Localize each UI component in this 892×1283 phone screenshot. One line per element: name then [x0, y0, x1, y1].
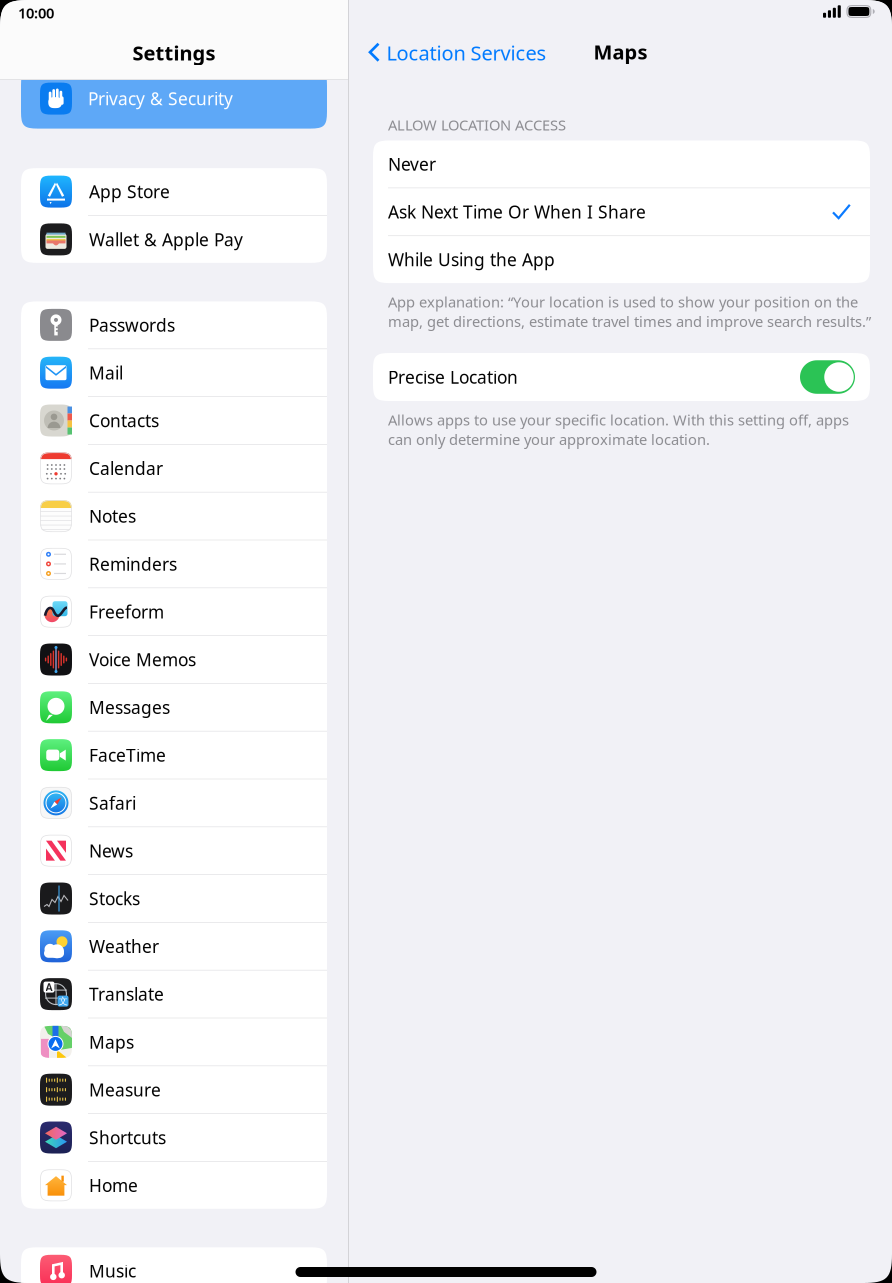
- button[interactable]: Ask Next Time Or When I Share: [373, 188, 870, 235]
- staticText: Precise Location: [388, 365, 518, 388]
- staticText: Voice Memos: [89, 648, 196, 671]
- staticText: Maps: [89, 1030, 134, 1053]
- staticText: Measure: [89, 1078, 161, 1101]
- staticText: Safari: [89, 791, 136, 814]
- staticText: Home: [89, 1174, 138, 1197]
- staticText: Notes: [89, 505, 136, 528]
- button[interactable]: FaceTime: [21, 732, 327, 779]
- staticText: While Using the App: [388, 248, 555, 271]
- staticText: Shortcuts: [89, 1126, 166, 1149]
- button[interactable]: Shortcuts: [21, 1114, 327, 1161]
- button[interactable]: Music: [21, 1247, 327, 1283]
- staticText: Location Services: [386, 39, 546, 66]
- staticText: Maps: [593, 38, 647, 65]
- button[interactable]: Location Services: [370, 39, 546, 66]
- staticText: Stocks: [89, 887, 140, 910]
- staticText: ALLOW LOCATION ACCESS: [388, 115, 566, 134]
- button[interactable]: Weather: [21, 923, 327, 970]
- button[interactable]: App Store: [21, 168, 327, 215]
- staticText: 10:00: [18, 3, 54, 22]
- button[interactable]: Calendar: [21, 445, 327, 492]
- staticText: FaceTime: [89, 744, 166, 767]
- staticText: Settings: [132, 39, 215, 66]
- button[interactable]: Voice Memos: [21, 636, 327, 683]
- button[interactable]: Stocks: [21, 875, 327, 922]
- button[interactable]: A: [21, 971, 327, 1018]
- button[interactable]: Measure: [21, 1066, 327, 1113]
- staticText: Reminders: [89, 552, 177, 575]
- staticText: A: [45, 980, 52, 994]
- button[interactable]: Contacts: [21, 397, 327, 444]
- staticText: 文: [58, 995, 67, 1007]
- button[interactable]: Freeform: [21, 588, 327, 635]
- staticText: Calendar: [89, 457, 163, 480]
- button[interactable]: Messages: [21, 684, 327, 731]
- staticText: Never: [388, 152, 436, 175]
- staticText: App explanation: “Your location is used …: [388, 292, 871, 331]
- staticText: Passwords: [89, 313, 175, 336]
- button[interactable]: Home: [21, 1162, 327, 1209]
- button[interactable]: While Using the App: [373, 236, 870, 283]
- staticText: Music: [89, 1259, 136, 1282]
- staticText: Translate: [89, 983, 164, 1006]
- button[interactable]: Passwords: [21, 301, 327, 348]
- button[interactable]: Mail: [21, 349, 327, 396]
- staticText: App Store: [89, 180, 170, 203]
- staticText: Freeform: [89, 600, 164, 623]
- button[interactable]: News: [21, 827, 327, 874]
- staticText: Contacts: [89, 409, 159, 432]
- button[interactable]: Notes: [21, 493, 327, 540]
- button[interactable]: Privacy & Security: [0, 80, 348, 129]
- staticText: Ask Next Time Or When I Share: [388, 200, 646, 223]
- staticText: Privacy & Security: [88, 87, 233, 110]
- button[interactable]: Never: [373, 140, 870, 187]
- staticText: Weather: [89, 935, 159, 958]
- button[interactable]: Wallet & Apple Pay: [21, 216, 327, 263]
- staticText: Wallet & Apple Pay: [89, 228, 243, 251]
- button[interactable]: Safari: [21, 779, 327, 826]
- button[interactable]: Precise Location: [800, 360, 855, 394]
- staticText: Messages: [89, 696, 170, 719]
- staticText: News: [89, 839, 133, 862]
- button[interactable]: Reminders: [21, 540, 327, 587]
- staticText: Allows apps to use your specific locatio…: [388, 410, 849, 449]
- staticText: Mail: [89, 361, 123, 384]
- button[interactable]: Maps: [21, 1018, 327, 1065]
